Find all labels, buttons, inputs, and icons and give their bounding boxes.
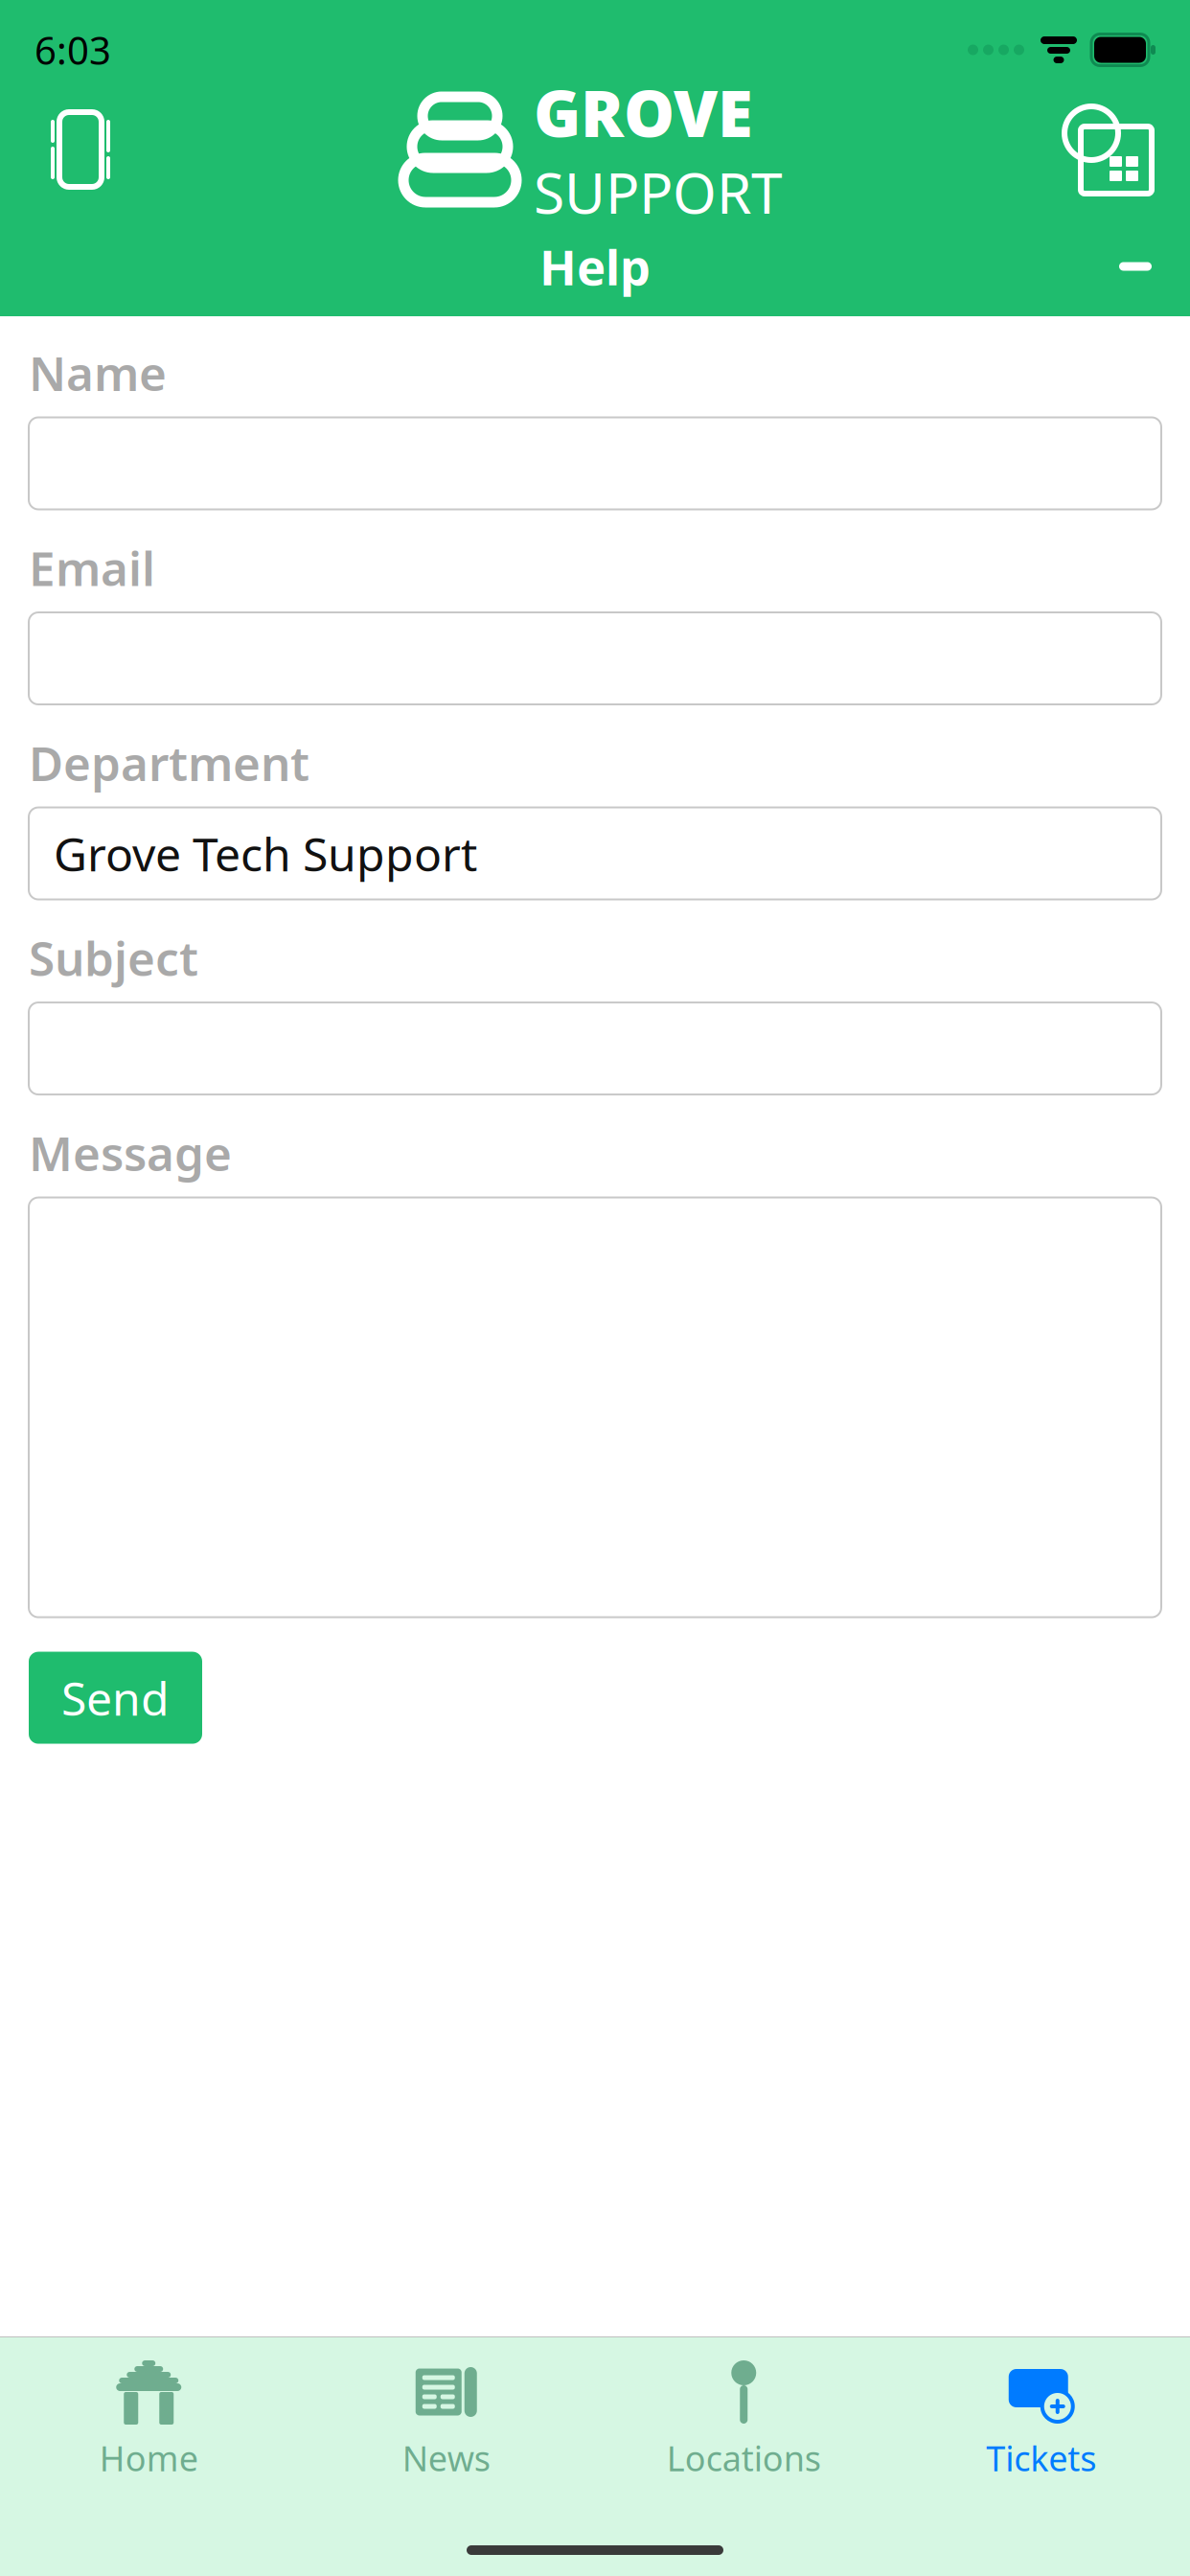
- button[interactable]: Minimize: [1106, 249, 1165, 284]
- staticText: Help: [539, 234, 651, 299]
- staticText: Send: [61, 1667, 170, 1728]
- staticText: GROVE: [534, 70, 753, 155]
- staticText: Grove Tech Support: [54, 823, 477, 884]
- staticText: News: [402, 2435, 490, 2481]
- staticText: 6:03: [34, 24, 111, 75]
- button[interactable]: Tickets: [892, 2351, 1190, 2487]
- button[interactable]: News: [297, 2351, 595, 2487]
- staticText: Locations: [667, 2435, 821, 2481]
- staticText: SUPPORT: [534, 155, 783, 229]
- button[interactable]: Locations: [595, 2351, 892, 2487]
- staticText: Email: [29, 536, 155, 599]
- button[interactable]: Schedule: [1056, 97, 1156, 202]
- button[interactable]: Home: [0, 2351, 297, 2487]
- staticText: Subject: [29, 926, 198, 989]
- staticText: Tickets: [986, 2435, 1096, 2481]
- staticText: Name: [29, 341, 167, 404]
- staticText: Message: [29, 1121, 232, 1184]
- button[interactable]: Contact: [34, 97, 126, 202]
- button[interactable]: Send: [29, 1652, 202, 1744]
- staticText: Home: [99, 2435, 198, 2481]
- staticText: Department: [29, 731, 309, 794]
